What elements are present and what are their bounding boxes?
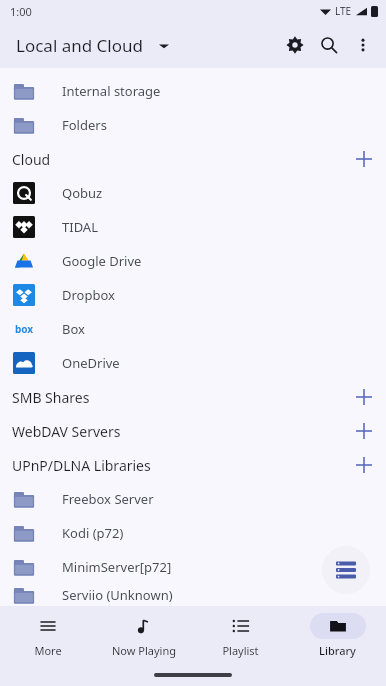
staticText: TIDAL	[62, 218, 98, 236]
button[interactable]: Freebox Server	[0, 482, 386, 516]
staticText: Now Playing	[112, 643, 176, 658]
button[interactable]: Settings	[278, 28, 312, 62]
staticText: SMB Shares	[12, 388, 90, 407]
staticText: LTE	[335, 4, 352, 18]
staticText: MinimServer[p72]	[62, 558, 172, 576]
staticText: Qobuz	[62, 184, 103, 202]
button[interactable]: MinimServer[p72]	[0, 550, 386, 584]
staticText: Local and Cloud	[16, 34, 143, 57]
staticText: WebDAV Servers	[12, 422, 121, 441]
button[interactable]: Serviio (Unknown)	[0, 584, 386, 606]
button[interactable]: Kodi (p72)	[0, 516, 386, 550]
button[interactable]: Cloud	[0, 142, 386, 176]
button[interactable]: Qobuz	[0, 176, 386, 210]
button[interactable]: Playlist	[192, 606, 289, 664]
button[interactable]: Library	[289, 606, 386, 664]
button[interactable]: Google Drive	[0, 244, 386, 278]
staticText: Library	[319, 643, 356, 658]
staticText: Google Drive	[62, 252, 142, 270]
staticText: Freebox Server	[62, 490, 154, 508]
button[interactable]: box	[0, 312, 386, 346]
button[interactable]: Local and Cloud	[12, 30, 173, 61]
button[interactable]: OneDrive	[0, 346, 386, 380]
button[interactable]: Internal storage	[0, 74, 386, 108]
staticText: Internal storage	[62, 82, 161, 100]
button[interactable]: Dropbox	[0, 278, 386, 312]
staticText: 1:00	[10, 4, 32, 19]
button[interactable]: WebDAV Servers	[0, 414, 386, 448]
staticText: Serviio (Unknown)	[62, 586, 173, 604]
staticText: Dropbox	[62, 286, 115, 304]
button[interactable]: Search	[312, 28, 346, 62]
button[interactable]: More options	[346, 28, 380, 62]
button[interactable]: Queue	[322, 546, 370, 594]
button[interactable]: TIDAL	[0, 210, 386, 244]
button[interactable]: UPnP/DLNA Libraries	[0, 448, 386, 482]
staticText: Cloud	[12, 150, 51, 169]
button[interactable]: Now Playing	[96, 606, 192, 664]
staticText: Folders	[62, 116, 107, 134]
button[interactable]: SMB Shares	[0, 380, 386, 414]
staticText: UPnP/DLNA Libraries	[12, 456, 151, 475]
staticText: Kodi (p72)	[62, 524, 124, 542]
button[interactable]: Folders	[0, 108, 386, 142]
staticText: More	[34, 643, 62, 658]
button[interactable]: More	[0, 606, 96, 664]
staticText: Playlist	[222, 643, 259, 658]
staticText: box	[15, 322, 34, 336]
staticText: Box	[62, 320, 85, 338]
staticText: OneDrive	[62, 354, 120, 372]
